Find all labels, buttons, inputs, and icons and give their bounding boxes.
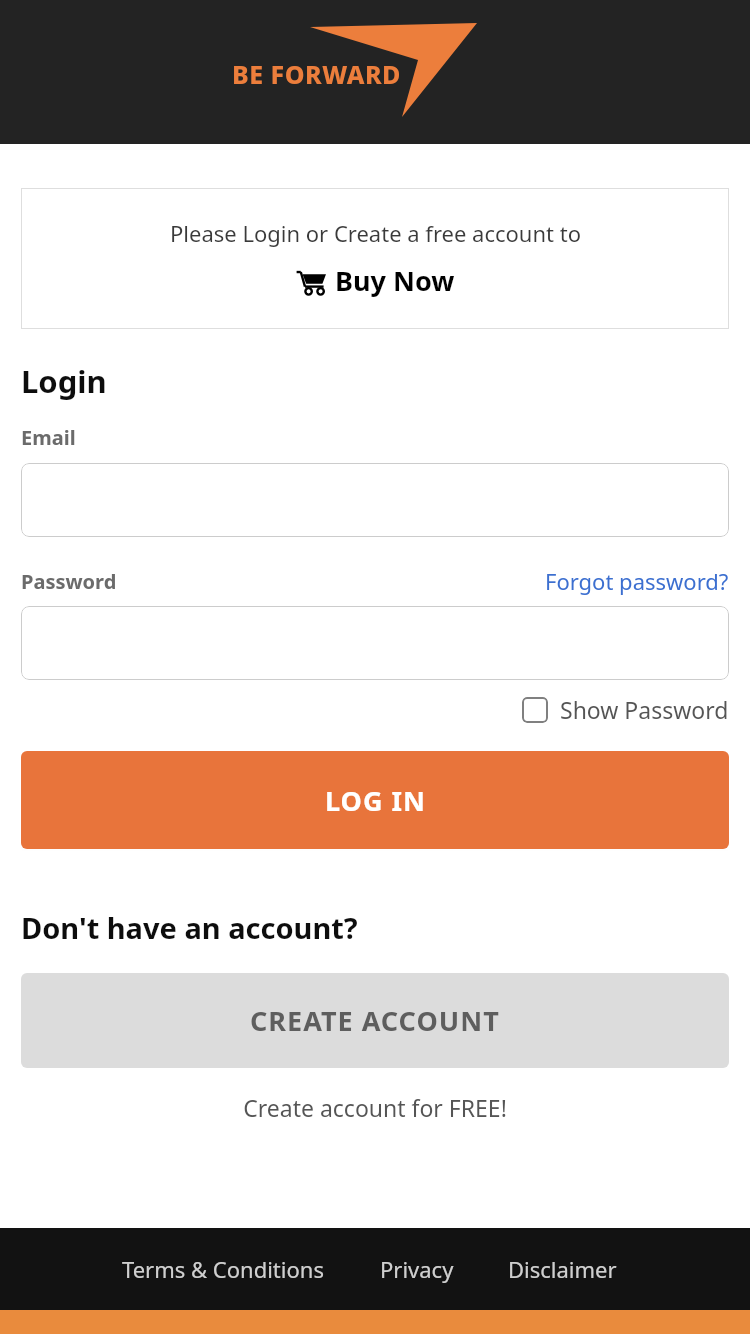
button[interactable]: Forgot password? — [545, 566, 729, 596]
button[interactable]: Privacy — [380, 1254, 454, 1284]
staticText: Show Password — [560, 694, 729, 725]
staticText: Privacy — [380, 1254, 454, 1284]
button[interactable]: Please Login or Create a free account to — [21, 188, 729, 329]
staticText: Please Login or Create a free account to — [170, 218, 581, 248]
staticText: Buy Now — [335, 262, 455, 299]
staticText: BE FORWARD — [232, 57, 401, 91]
button[interactable]: LOG IN — [21, 751, 729, 849]
other: Shopping cart — [296, 267, 326, 295]
staticText: Forgot password? — [545, 566, 729, 596]
staticText: Disclaimer — [508, 1254, 617, 1284]
staticText: Create account for FREE! — [0, 1092, 750, 1123]
staticText: CREATE ACCOUNT — [250, 1002, 500, 1039]
button[interactable] — [21, 606, 729, 680]
button[interactable]: Disclaimer — [508, 1254, 617, 1284]
staticText: Don't have an account? — [21, 908, 358, 947]
staticText: LOG IN — [325, 782, 426, 819]
staticText: Email — [21, 424, 76, 451]
button[interactable]: Terms & Conditions — [122, 1254, 324, 1284]
button[interactable]: CREATE ACCOUNT — [21, 973, 729, 1068]
button[interactable]: Show Password — [522, 694, 729, 725]
staticText: Password — [21, 568, 117, 595]
staticText: Login — [21, 360, 107, 402]
button[interactable] — [21, 463, 729, 537]
staticText: Terms & Conditions — [122, 1254, 324, 1284]
